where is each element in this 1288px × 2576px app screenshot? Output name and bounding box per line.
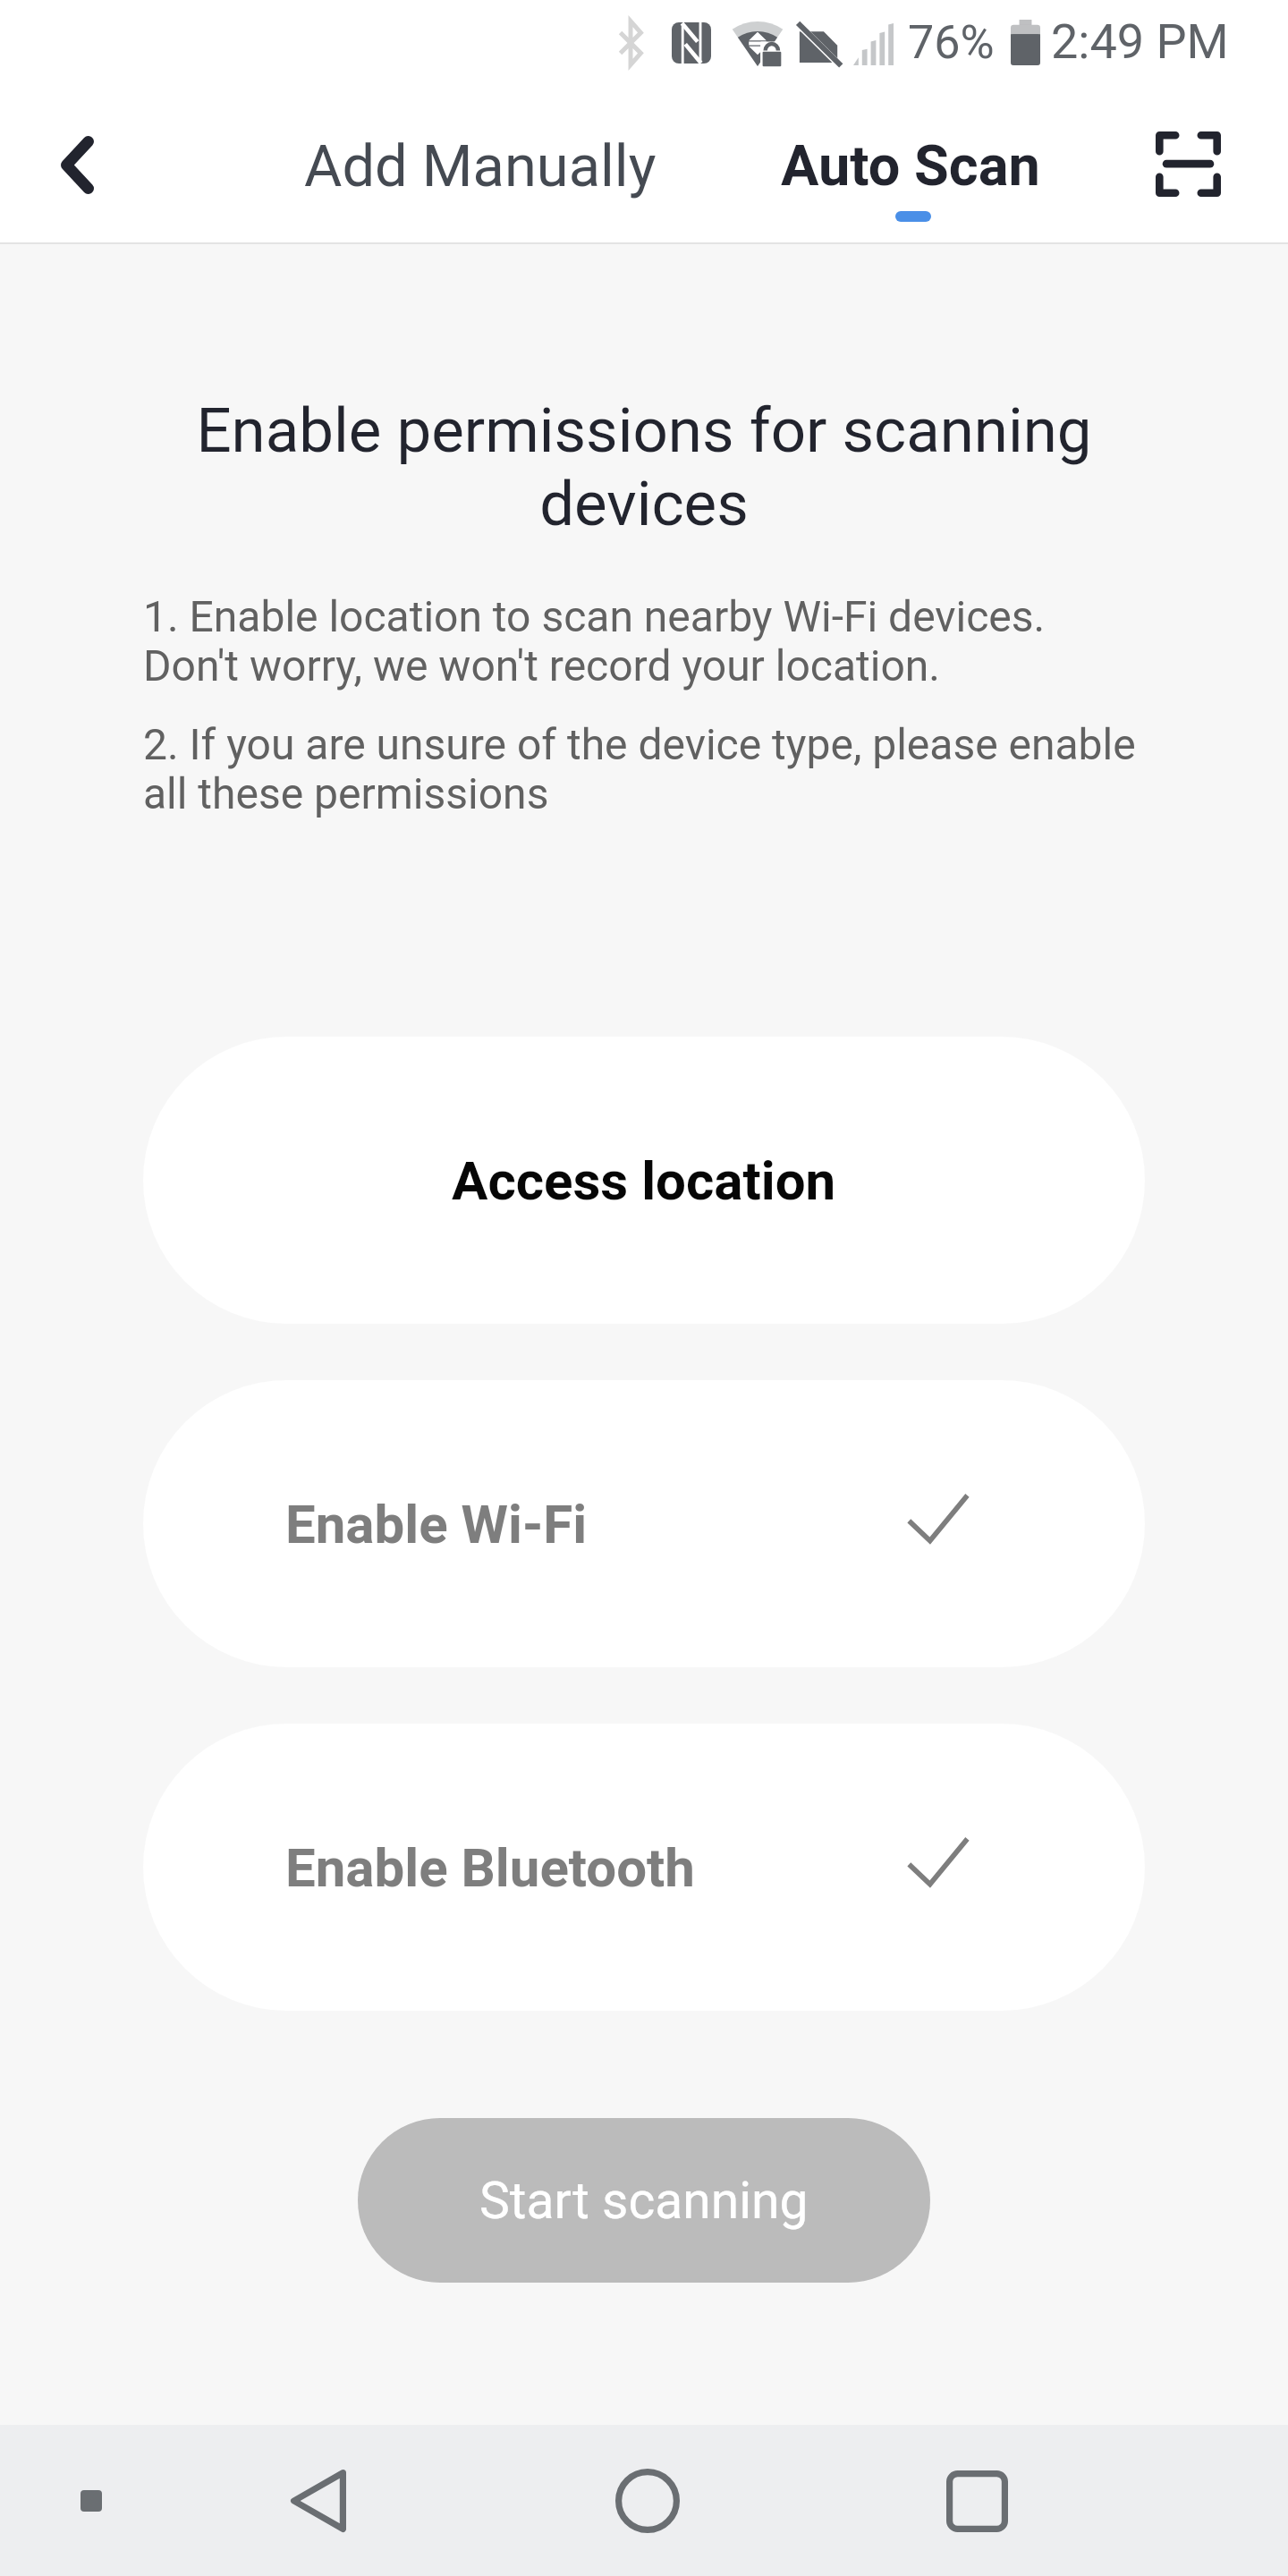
button[interactable]: Access location bbox=[143, 1037, 1145, 1324]
staticText: Enable Wi-Fi bbox=[285, 1493, 588, 1555]
button[interactable]: Enable Wi-Fi bbox=[143, 1380, 1145, 1667]
staticText: Access location bbox=[452, 1149, 836, 1212]
button[interactable]: Scan QR code bbox=[1125, 101, 1250, 226]
button[interactable]: Auto Scan bbox=[739, 107, 1082, 225]
staticText: Add Manually bbox=[304, 132, 657, 200]
staticText: Auto Scan bbox=[781, 133, 1040, 199]
button[interactable]: Enable Bluetooth bbox=[143, 1724, 1145, 2011]
staticText: 1. Enable location to scan nearby Wi-Fi … bbox=[143, 591, 1145, 691]
button[interactable]: Back bbox=[256, 2438, 381, 2563]
staticText: 2. If you are unsure of the device type,… bbox=[143, 719, 1145, 819]
button[interactable]: Start scanning bbox=[358, 2118, 930, 2283]
staticText: 2:49 PM bbox=[1051, 13, 1229, 70]
button[interactable]: Back bbox=[14, 102, 140, 227]
button[interactable]: Home bbox=[585, 2438, 710, 2563]
staticText: 76% bbox=[908, 15, 995, 70]
staticText: Enable permissions for scanning devices bbox=[159, 394, 1129, 540]
other: Hide navigation bar bbox=[80, 2490, 102, 2512]
button[interactable]: Recent apps bbox=[914, 2438, 1039, 2563]
staticText: Start scanning bbox=[479, 2171, 809, 2231]
staticText: Enable Bluetooth bbox=[285, 1836, 695, 1899]
button[interactable]: Add Manually bbox=[253, 107, 708, 225]
